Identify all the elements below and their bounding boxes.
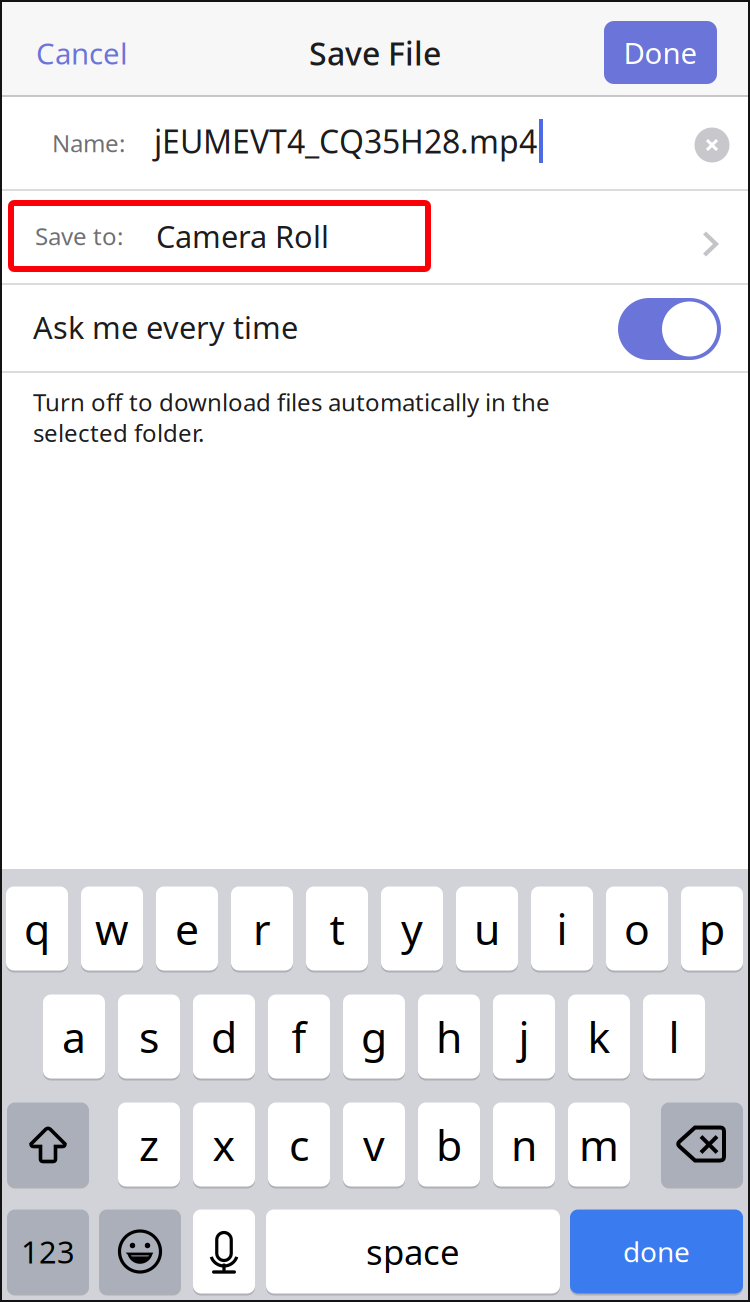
- button[interactable]: Cancel: [36, 6, 164, 100]
- staticText: Done: [623, 33, 697, 72]
- staticText: Cancel: [36, 33, 128, 72]
- staticText: selected folder.: [33, 417, 204, 449]
- button[interactable]: Ask me every time: [618, 286, 721, 372]
- button[interactable]: w: [81, 885, 143, 972]
- staticText: m: [579, 1116, 619, 1173]
- staticText: Camera Roll: [156, 216, 329, 256]
- staticText: p: [699, 900, 725, 957]
- button[interactable]: n: [493, 1101, 555, 1188]
- staticText: Turn off to download files automatically…: [33, 386, 550, 418]
- staticText: i: [556, 900, 567, 957]
- staticText: t: [329, 900, 344, 957]
- staticText: l: [668, 1008, 679, 1065]
- button[interactable]: f: [268, 993, 330, 1080]
- staticText: a: [62, 1008, 86, 1065]
- button[interactable]: jEUMEVT4_CQ35H28.mp4: [154, 95, 664, 187]
- staticText: s: [139, 1008, 159, 1065]
- button[interactable]: x: [193, 1101, 255, 1188]
- staticText: u: [474, 900, 500, 957]
- staticText: g: [361, 1008, 387, 1065]
- button[interactable]: m: [568, 1101, 630, 1188]
- button[interactable]: j: [493, 993, 555, 1080]
- staticText: e: [175, 900, 199, 957]
- button[interactable]: l: [643, 993, 705, 1080]
- button[interactable]: Emoji: [99, 1208, 181, 1295]
- button[interactable]: Dictation: [193, 1208, 255, 1295]
- button[interactable]: space: [266, 1208, 560, 1295]
- button[interactable]: s: [118, 993, 180, 1080]
- staticText: space: [366, 1228, 460, 1274]
- button[interactable]: k: [568, 993, 630, 1080]
- button[interactable]: r: [231, 885, 293, 972]
- button[interactable]: c: [268, 1101, 330, 1188]
- staticText: Save File: [309, 32, 441, 74]
- staticText: z: [139, 1116, 159, 1173]
- button[interactable]: o: [606, 885, 668, 972]
- button[interactable]: q: [6, 885, 68, 972]
- button[interactable]: i: [531, 885, 593, 972]
- staticText: y: [401, 900, 423, 957]
- button[interactable]: Shift: [7, 1101, 89, 1188]
- staticText: h: [436, 1008, 462, 1065]
- staticText: b: [436, 1116, 462, 1173]
- button[interactable]: e: [156, 885, 218, 972]
- staticText: jEUMEVT4_CQ35H28.mp4: [154, 120, 537, 162]
- button[interactable]: Save to:: [0, 192, 750, 284]
- button[interactable]: b: [418, 1101, 480, 1188]
- staticText: n: [511, 1116, 537, 1173]
- staticText: w: [95, 900, 129, 957]
- staticText: Name:: [52, 127, 125, 159]
- button[interactable]: p: [681, 885, 743, 972]
- button[interactable]: 123: [7, 1208, 89, 1295]
- staticText: done: [623, 1233, 690, 1270]
- button[interactable]: h: [418, 993, 480, 1080]
- button[interactable]: d: [193, 993, 255, 1080]
- button[interactable]: a: [43, 993, 105, 1080]
- button[interactable]: Clear text: [682, 99, 742, 191]
- staticText: Save to:: [35, 220, 123, 252]
- button[interactable]: y: [381, 885, 443, 972]
- button[interactable]: Done: [604, 21, 717, 84]
- button[interactable]: g: [343, 993, 405, 1080]
- button[interactable]: t: [306, 885, 368, 972]
- button[interactable]: u: [456, 885, 518, 972]
- staticText: f: [291, 1008, 306, 1065]
- staticText: k: [587, 1008, 610, 1065]
- staticText: q: [24, 900, 50, 957]
- button[interactable]: done: [570, 1208, 743, 1295]
- staticText: j: [518, 1008, 529, 1065]
- staticText: x: [212, 1116, 235, 1173]
- staticText: 123: [21, 1231, 75, 1272]
- staticText: v: [363, 1116, 385, 1173]
- button[interactable]: Delete: [661, 1101, 743, 1188]
- staticText: Ask me every time: [33, 307, 298, 347]
- staticText: c: [289, 1116, 309, 1173]
- staticText: d: [211, 1008, 237, 1065]
- button[interactable]: z: [118, 1101, 180, 1188]
- staticText: o: [624, 900, 650, 957]
- staticText: r: [253, 900, 271, 957]
- button[interactable]: v: [343, 1101, 405, 1188]
